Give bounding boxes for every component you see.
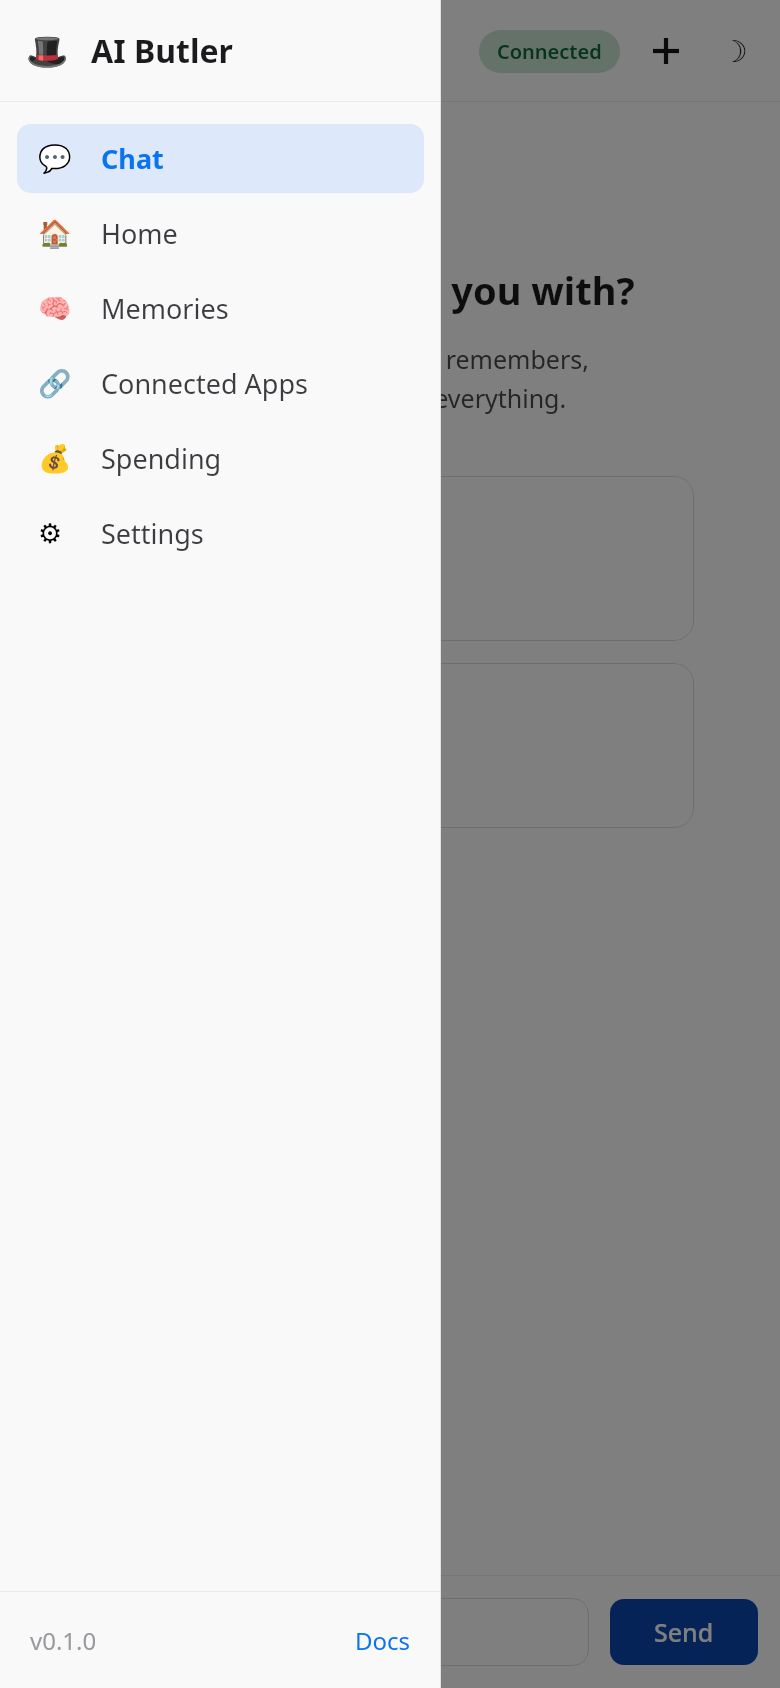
staticText: Ask me anything… [40,1617,239,1648]
staticText: 🏠 [38,218,72,250]
staticText: Connected Apps [101,365,308,402]
staticText: 🎩 [26,31,69,71]
button[interactable] [86,476,694,641]
button[interactable]: Docs [355,1624,411,1657]
button[interactable]: 🔗 [17,349,424,418]
button[interactable]: Open navigation menu [20,28,66,74]
button[interactable]: New chat [642,27,690,75]
staticText: ☽ [721,34,748,69]
staticText: v0.1.0 [30,1624,97,1657]
button[interactable]: ⚙️ [17,499,424,568]
button[interactable] [0,0,780,1688]
staticText: Chat [101,140,164,177]
staticText: Connected [497,38,602,65]
button[interactable] [86,663,694,828]
staticText: AI Butler [91,29,233,73]
staticText: 💬 [38,143,72,175]
staticText: Settings [101,515,204,552]
button[interactable]: 🧠 [17,274,424,343]
button[interactable]: 💰 [17,424,424,493]
staticText: 🔗 [38,368,72,400]
button[interactable]: 💬 [17,124,424,193]
staticText: 🧠 [38,293,72,325]
staticText: ⚙️ [38,518,63,549]
button[interactable]: 🏠 [17,199,424,268]
staticText: Memories [101,290,229,327]
button[interactable]: Toggle dark mode [710,27,758,75]
button[interactable]: Send [610,1599,758,1665]
staticText: Home [101,215,178,252]
staticText: Your personal AI that remembers, plans a… [191,342,589,416]
staticText: Spending [101,440,222,477]
staticText: Docs [355,1624,411,1657]
staticText: Send [654,1615,714,1649]
button[interactable]: Connected [479,30,620,73]
staticText: What can I help you with? [146,264,635,316]
staticText: 💰 [38,443,72,475]
button[interactable]: Ask me anything… [22,1598,589,1666]
